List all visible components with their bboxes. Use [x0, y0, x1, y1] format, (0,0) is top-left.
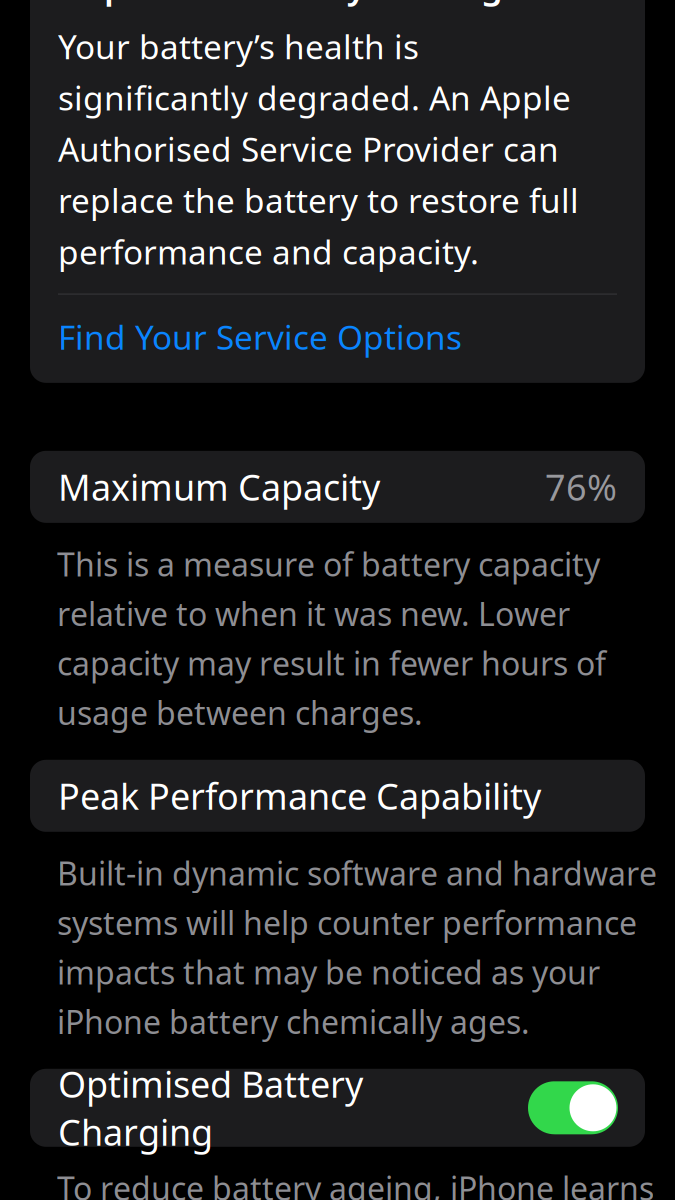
staticText: This is a measure of battery capacity re… [57, 543, 606, 734]
staticText: To reduce battery ageing, iPhone learns … [57, 1167, 654, 1200]
button[interactable]: Optimised Battery Charging [30, 1069, 645, 1147]
staticText: Peak Performance Capability [58, 772, 541, 820]
staticText: Optimised Battery Charging [58, 1060, 363, 1156]
staticText: 76% [545, 463, 617, 511]
staticText: Important Battery Message [58, 0, 523, 8]
button[interactable]: Find Your Service Options [58, 295, 617, 379]
staticText: Find Your Service Options [58, 315, 462, 359]
button[interactable]: Maximum Capacity [30, 451, 645, 523]
staticText: Your battery’s health is significantly d… [58, 24, 579, 274]
staticText: Built-in dynamic software and hardware s… [57, 852, 657, 1043]
staticText: Maximum Capacity [58, 463, 380, 511]
button[interactable]: Peak Performance Capability [30, 760, 645, 832]
